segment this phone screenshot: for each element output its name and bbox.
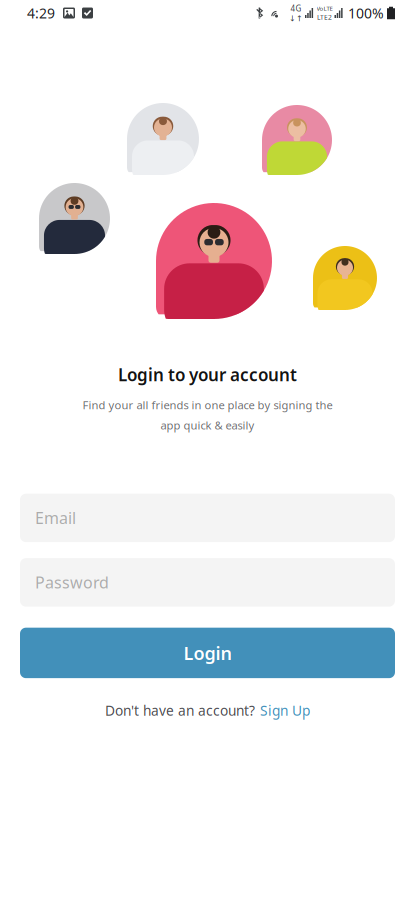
staticText: app quick & easily xyxy=(160,417,254,433)
staticText: Don't have an account? xyxy=(105,701,255,720)
staticText: 100% xyxy=(348,3,384,23)
button[interactable]: Password xyxy=(20,558,395,607)
button[interactable]: Email xyxy=(20,494,395,542)
staticText: Email xyxy=(35,507,76,529)
staticText: LTE2 xyxy=(317,12,332,22)
staticText: 4:29 xyxy=(27,3,55,23)
button[interactable]: Login xyxy=(20,628,395,678)
staticText: 4G xyxy=(290,3,301,14)
staticText: ↓↑ xyxy=(289,14,303,23)
button[interactable]: Sign Up xyxy=(260,701,310,720)
staticText: Password xyxy=(35,571,109,593)
staticText: Sign Up xyxy=(260,701,310,720)
staticText: Login to your account xyxy=(118,363,297,386)
staticText: Find your all friends in one place by si… xyxy=(82,397,332,412)
staticText: VoLTE xyxy=(316,4,332,13)
staticText: Login xyxy=(183,641,231,665)
